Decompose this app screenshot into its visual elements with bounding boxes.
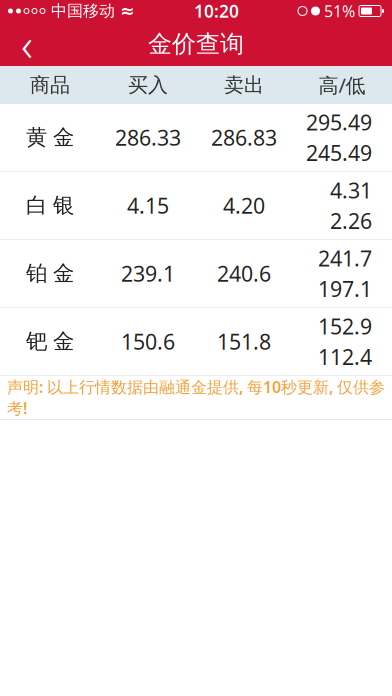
- staticText: 4.15: [127, 191, 169, 220]
- button[interactable]: 返回: [0, 22, 54, 66]
- staticText: 4.20: [223, 191, 265, 220]
- staticText: 中国移动: [51, 1, 115, 21]
- staticText: 声明: 以上行情数据由融通金提供, 每10秒更新, 仅供参考!: [7, 376, 385, 419]
- staticText: 239.1: [121, 259, 175, 288]
- staticText: 2.26: [330, 206, 372, 235]
- staticText: 白 银: [26, 192, 74, 219]
- staticText: 286.33: [115, 123, 181, 152]
- staticText: 151.8: [217, 327, 271, 356]
- staticText: 152.9: [318, 312, 372, 340]
- staticText: 金价查询: [148, 29, 244, 59]
- staticText: 241.7: [318, 244, 372, 272]
- staticText: 买入: [128, 73, 168, 97]
- staticText: ≈: [120, 1, 135, 21]
- staticText: ‹: [21, 14, 33, 74]
- staticText: 150.6: [121, 327, 175, 356]
- staticText: 商品: [30, 73, 70, 97]
- staticText: 197.1: [318, 274, 372, 303]
- staticText: 钯 金: [26, 328, 74, 355]
- staticText: 4.31: [330, 176, 372, 204]
- staticText: 286.83: [211, 123, 277, 152]
- staticText: 铂 金: [26, 260, 74, 287]
- staticText: 245.49: [306, 138, 372, 167]
- staticText: 240.6: [217, 259, 271, 288]
- staticText: 高/低: [318, 72, 365, 98]
- staticText: 51%: [324, 0, 355, 22]
- staticText: 112.4: [318, 342, 372, 371]
- staticText: 295.49: [306, 108, 372, 136]
- staticText: 卖出: [224, 73, 264, 97]
- staticText: 黄 金: [26, 124, 74, 151]
- staticText: 10:20: [194, 0, 239, 22]
